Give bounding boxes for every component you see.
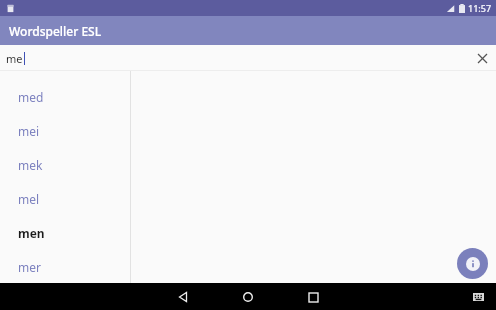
button[interactable]: mer — [0, 250, 130, 283]
button[interactable]: me — [0, 45, 496, 71]
button[interactable]: med — [0, 80, 130, 114]
button[interactable]: Keyboard — [470, 289, 486, 305]
staticText: 11:57 — [468, 2, 492, 14]
staticText: me — [6, 51, 23, 66]
staticText: mer — [18, 259, 41, 275]
staticText: men — [18, 225, 45, 241]
staticText: Wordspeller ESL — [9, 23, 102, 39]
button[interactable]: mek — [0, 148, 130, 182]
button[interactable]: Recents — [300, 284, 326, 310]
button[interactable]: Home — [235, 284, 261, 310]
button[interactable]: Back — [170, 284, 196, 310]
button[interactable]: mel — [0, 182, 130, 216]
button[interactable]: Clear — [474, 50, 490, 66]
staticText: mel — [18, 191, 40, 207]
button[interactable]: men — [0, 216, 130, 250]
button[interactable]: mei — [0, 114, 130, 148]
staticText: med — [18, 89, 44, 105]
staticText: mei — [18, 123, 40, 139]
staticText: mek — [18, 157, 43, 173]
button[interactable]: Info — [457, 248, 488, 279]
